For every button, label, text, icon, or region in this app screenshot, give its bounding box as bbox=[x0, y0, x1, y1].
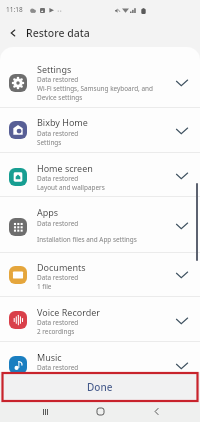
button[interactable]: Navigate up bbox=[2, 22, 24, 44]
staticText: Installation files and App settings bbox=[37, 235, 137, 244]
staticText: Data restored bbox=[37, 363, 79, 372]
button[interactable] bbox=[0, 108, 200, 160]
staticText: Settings bbox=[37, 138, 62, 147]
staticText: 2 recordings bbox=[37, 327, 75, 336]
staticText: 11:18 bbox=[6, 5, 23, 14]
staticText: Restore data bbox=[26, 26, 90, 40]
staticText: Apps bbox=[37, 206, 59, 218]
staticText: Data restored bbox=[37, 318, 79, 327]
button[interactable] bbox=[0, 154, 200, 206]
staticText: Data restored bbox=[37, 219, 79, 228]
button[interactable] bbox=[0, 198, 200, 257]
button[interactable]: Back bbox=[145, 401, 167, 422]
button[interactable]: Done bbox=[0, 372, 200, 401]
staticText: Music bbox=[37, 351, 62, 363]
staticText: Bixby Home bbox=[37, 116, 88, 128]
staticText: Done bbox=[87, 380, 113, 394]
button[interactable] bbox=[0, 253, 200, 305]
button[interactable] bbox=[0, 298, 200, 350]
button[interactable] bbox=[0, 55, 200, 116]
button[interactable]: Home bbox=[89, 401, 111, 422]
staticText: Data restored bbox=[37, 174, 79, 183]
staticText: Data restored bbox=[37, 75, 79, 84]
staticText: Wi-Fi settings, Samsung keyboard, and bbox=[37, 84, 153, 93]
staticText: Voice Recorder bbox=[37, 306, 101, 318]
button[interactable]: Recents bbox=[34, 401, 56, 422]
staticText: Settings bbox=[37, 63, 72, 75]
staticText: Data restored bbox=[37, 273, 79, 282]
staticText: 1 file bbox=[37, 282, 52, 291]
staticText: Layout and wallpapers bbox=[37, 183, 105, 192]
staticText: Home screen bbox=[37, 162, 93, 174]
button[interactable] bbox=[0, 343, 200, 386]
staticText: Documents bbox=[37, 261, 86, 273]
staticText: Data restored bbox=[37, 129, 79, 138]
staticText: Device settings bbox=[37, 93, 83, 102]
